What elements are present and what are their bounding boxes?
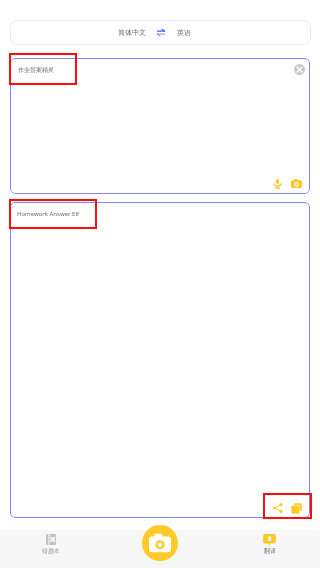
button[interactable]: Camera input [289,176,303,190]
staticText: 英语 [177,28,191,37]
button[interactable]: Voice input [270,176,284,190]
button[interactable]: 错题本 [14,530,88,568]
button[interactable]: Copy [289,501,303,515]
staticText: 作业答案精灵 [18,66,54,74]
button[interactable]: Take photo [142,525,178,561]
staticText: 翻译 [252,547,288,555]
button[interactable]: Clear text [292,62,306,76]
staticText: 错题本 [33,547,69,555]
button[interactable]: 翻译 [233,530,307,568]
button[interactable]: Share [271,501,285,515]
staticText: Homework Answer Elf [17,210,80,218]
staticText: 简体中文 [118,28,146,37]
button[interactable]: 简体中文 [10,20,311,45]
